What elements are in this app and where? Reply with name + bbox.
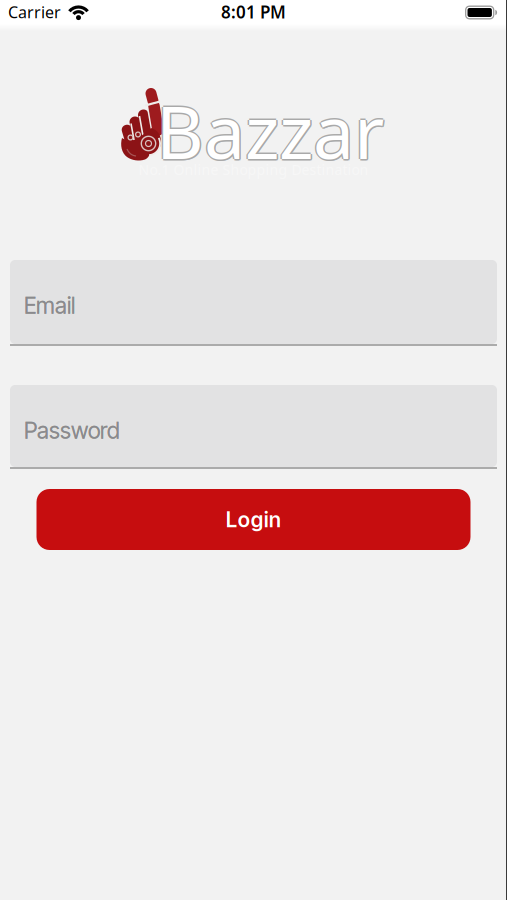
staticText: No.1 Online Shopping Destination [138,160,368,179]
textField[interactable]: Email [24,292,497,319]
staticText: Bazzar [156,79,384,179]
staticText: Bazzar [156,81,384,180]
staticText: Bazzar [156,82,384,182]
staticText: 8:01 PM [221,0,286,24]
staticText: Bazzar [157,82,385,182]
staticText: Email [24,292,75,319]
button[interactable]: Login [36,489,470,550]
staticText: Password [24,417,120,444]
secureTextField[interactable]: Password [24,417,497,444]
staticText: Carrier [8,1,61,23]
staticText: Bazzar [154,81,382,180]
staticText: Login [225,507,281,532]
staticText: Password [24,417,120,444]
staticText: Email [24,292,75,319]
staticText: Bazzar [157,81,385,180]
